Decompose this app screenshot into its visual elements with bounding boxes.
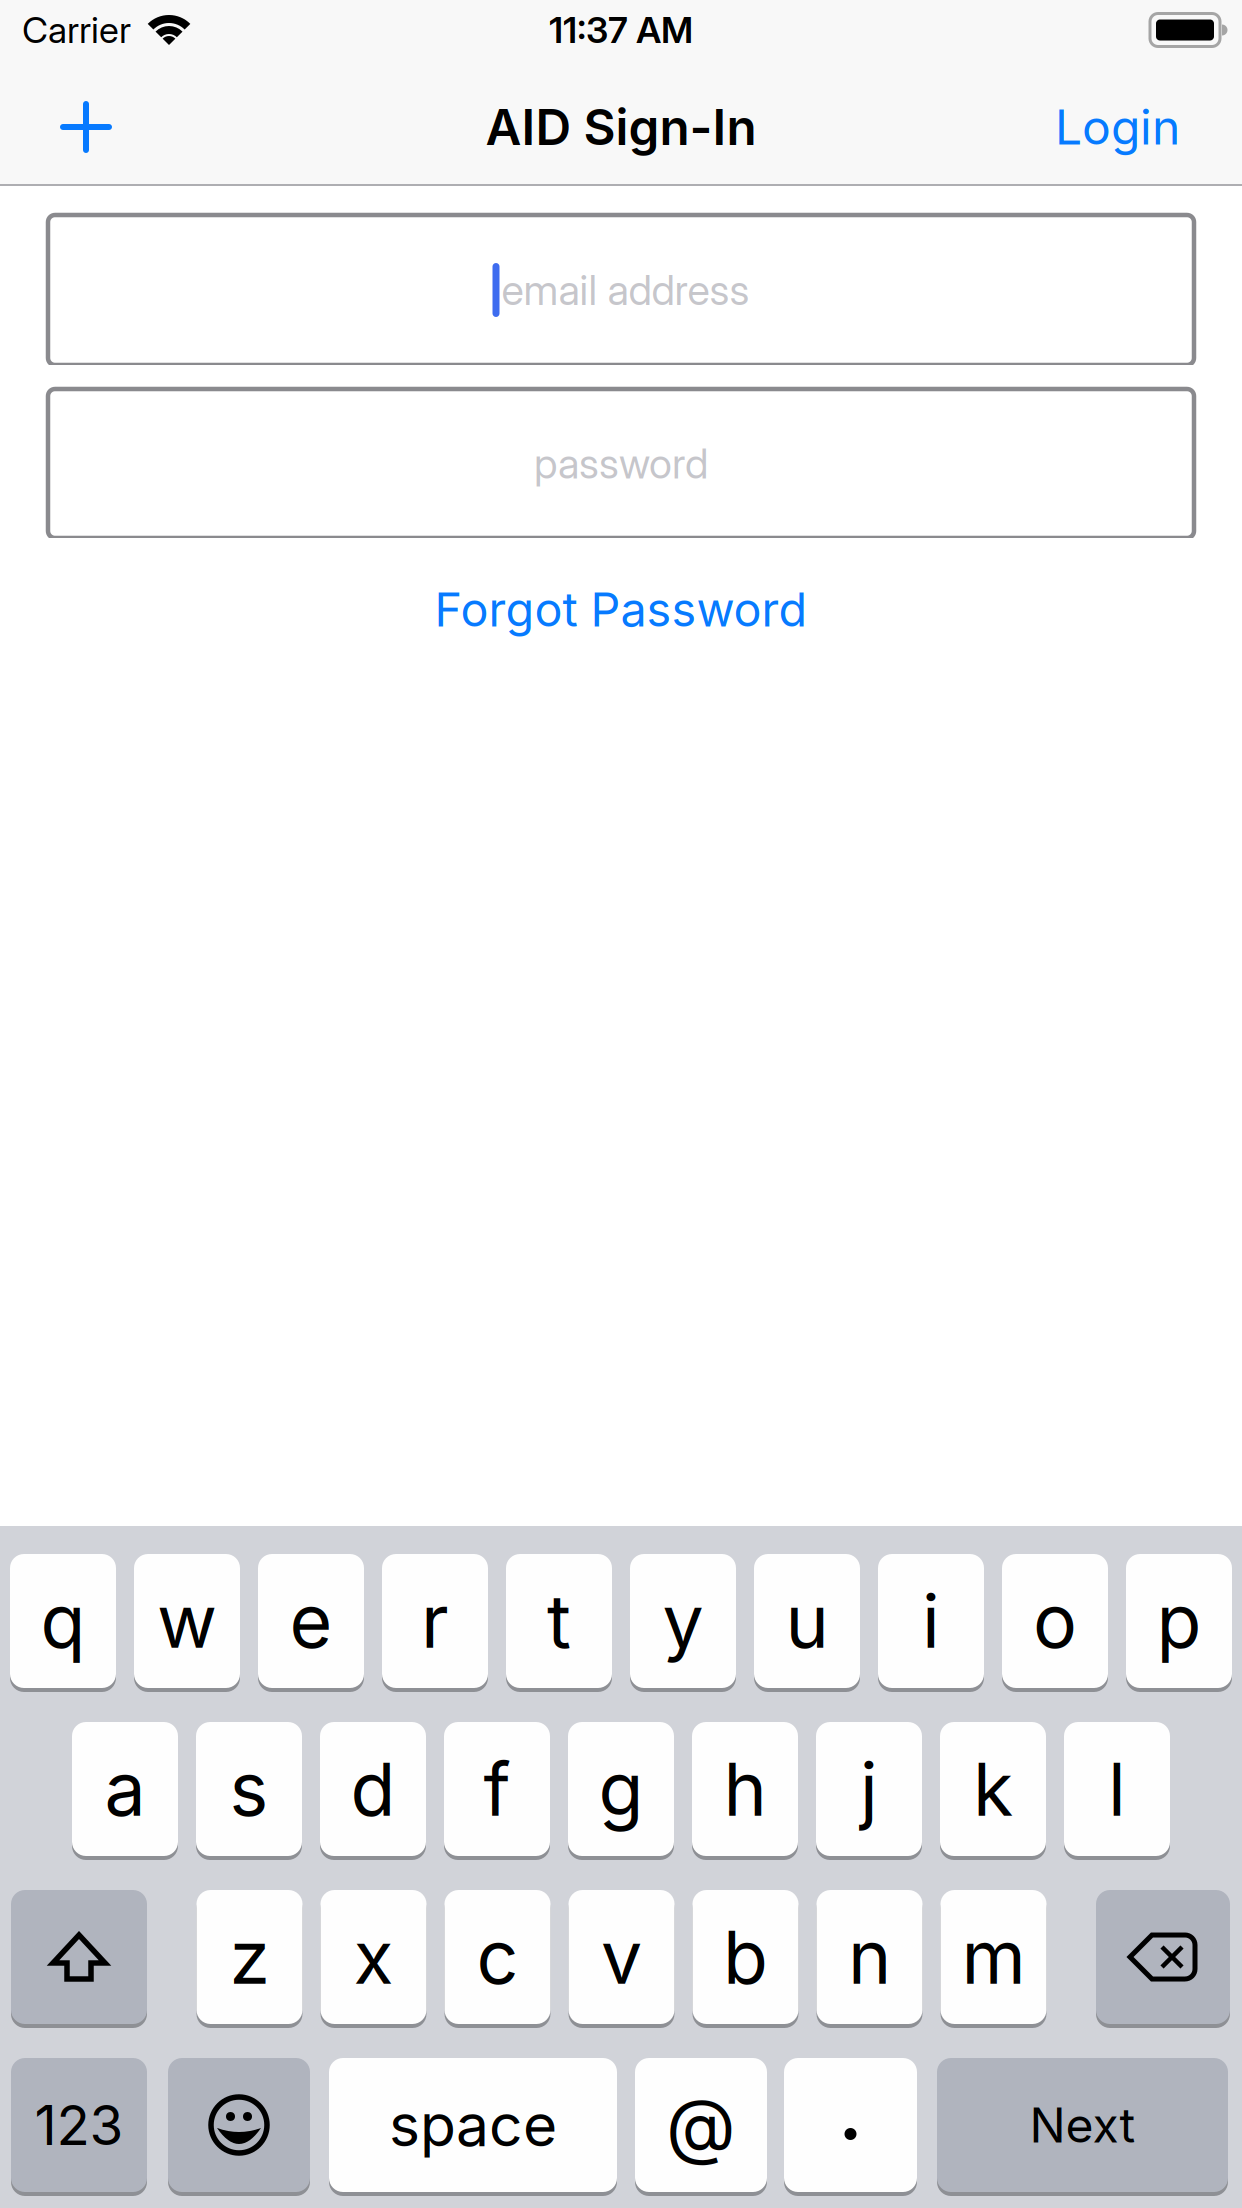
button[interactable]: @ [635, 2058, 767, 2192]
button[interactable]: i [878, 1554, 984, 1688]
staticText: k [973, 1746, 1013, 1832]
staticText: c [476, 1914, 518, 2000]
staticText: z [229, 1914, 269, 2000]
staticText: e [289, 1578, 332, 1664]
staticText: p [1156, 1578, 1201, 1664]
button[interactable]: j [816, 1722, 922, 1856]
button[interactable]: z [196, 1890, 302, 2024]
staticText: Login [1055, 99, 1180, 155]
button[interactable]: n [816, 1890, 922, 2024]
staticText: t [547, 1578, 571, 1664]
button[interactable]: m [940, 1890, 1046, 2024]
staticText: w [157, 1578, 217, 1664]
button[interactable]: o [1002, 1554, 1108, 1688]
button[interactable]: 123 [11, 2058, 147, 2192]
button[interactable]: w [134, 1554, 240, 1688]
staticText: 11:37 AM [549, 9, 693, 51]
staticText: f [483, 1746, 510, 1832]
staticText: y [662, 1578, 703, 1664]
staticText: n [848, 1914, 891, 2000]
button[interactable]: Shift [11, 1890, 147, 2024]
staticText: l [1108, 1746, 1126, 1832]
staticText: b [723, 1914, 768, 2000]
button[interactable]: y [630, 1554, 736, 1688]
staticText: q [40, 1578, 85, 1664]
staticText: i [922, 1578, 940, 1664]
button[interactable]: Emoji [168, 2058, 310, 2192]
button[interactable]: a [72, 1722, 178, 1856]
button[interactable]: g [568, 1722, 674, 1856]
button[interactable]: Delete [1096, 1890, 1230, 2024]
button[interactable]: Forgot Password [434, 582, 807, 637]
button[interactable]: v [568, 1890, 674, 2024]
staticText: r [421, 1578, 449, 1664]
staticText: h [723, 1746, 766, 1832]
button[interactable]: e [258, 1554, 364, 1688]
button[interactable]: b [692, 1890, 798, 2024]
button[interactable]: c [444, 1890, 550, 2024]
staticText: o [1033, 1578, 1077, 1664]
button[interactable]: k [940, 1722, 1046, 1856]
button[interactable]: s [196, 1722, 302, 1856]
staticText: u [785, 1578, 828, 1664]
staticText: Next [1029, 2097, 1135, 2153]
button[interactable]: t [506, 1554, 612, 1688]
button[interactable]: l [1064, 1722, 1170, 1856]
staticText: a [104, 1746, 145, 1832]
staticText: Carrier [22, 9, 131, 51]
staticText: @ [666, 2082, 736, 2167]
staticText: password [534, 439, 708, 488]
staticText: Forgot Password [434, 582, 807, 637]
button[interactable]: u [754, 1554, 860, 1688]
button[interactable]: h [692, 1722, 798, 1856]
staticText: space [389, 2090, 557, 2160]
staticText: d [350, 1746, 395, 1832]
staticText: m [961, 1914, 1025, 2000]
button[interactable]: r [382, 1554, 488, 1688]
button[interactable]: email address [0, 215, 1242, 365]
button[interactable]: password [0, 389, 1242, 538]
button[interactable]: p [1126, 1554, 1232, 1688]
button[interactable]: Add [60, 101, 112, 153]
staticText: j [860, 1746, 878, 1832]
staticText: email address [501, 266, 749, 314]
staticText: x [353, 1914, 393, 2000]
staticText: AID Sign-In [485, 98, 756, 156]
button[interactable]: Login [1055, 99, 1180, 155]
button[interactable]: space [329, 2058, 617, 2192]
button[interactable]: Next [937, 2058, 1228, 2192]
button[interactable]: q [10, 1554, 116, 1688]
staticText: s [229, 1746, 268, 1832]
button[interactable]: d [320, 1722, 426, 1856]
staticText: v [601, 1914, 642, 2000]
staticText: g [598, 1746, 643, 1832]
button[interactable]: f [444, 1722, 550, 1856]
staticText: 123 [34, 2093, 123, 2157]
button[interactable]: . [784, 2058, 917, 2192]
button[interactable]: x [320, 1890, 426, 2024]
